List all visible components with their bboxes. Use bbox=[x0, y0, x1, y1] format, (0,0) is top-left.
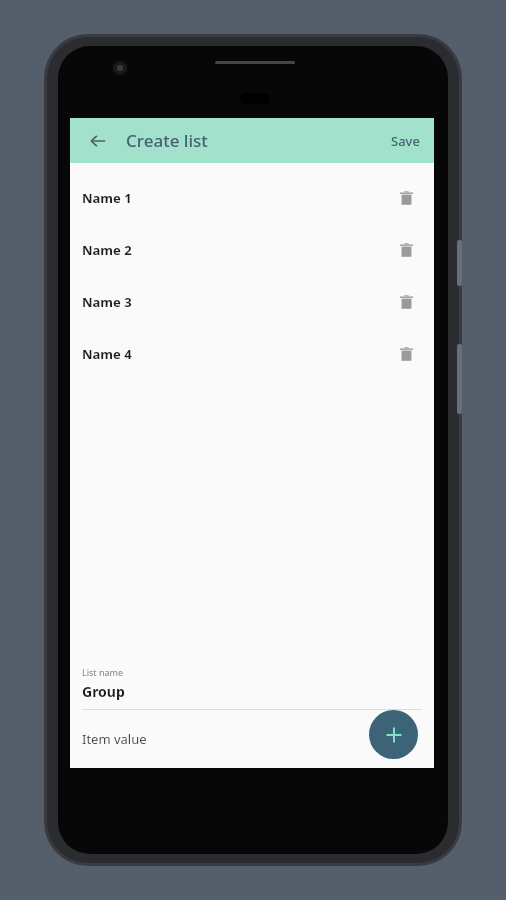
staticText: Group bbox=[82, 682, 125, 701]
button[interactable]: Delete Name 1 bbox=[390, 182, 422, 214]
staticText: List name bbox=[82, 666, 124, 678]
staticText: Name 1 bbox=[82, 189, 132, 207]
button[interactable]: Name 1 bbox=[70, 172, 434, 224]
button[interactable]: Item value bbox=[70, 710, 434, 768]
staticText: Item value bbox=[82, 730, 147, 748]
button[interactable]: Name 4 bbox=[70, 328, 434, 380]
button[interactable]: Name 3 bbox=[70, 276, 434, 328]
staticText: Name 3 bbox=[82, 293, 132, 311]
button[interactable]: Add item bbox=[369, 710, 418, 759]
button[interactable]: Delete Name 2 bbox=[390, 234, 422, 266]
staticText: Create list bbox=[126, 129, 208, 152]
button[interactable]: List name bbox=[70, 658, 434, 709]
button[interactable]: Save bbox=[377, 124, 434, 158]
staticText: Save bbox=[391, 132, 420, 150]
staticText: Name 4 bbox=[82, 345, 132, 363]
button[interactable]: Delete Name 4 bbox=[390, 338, 422, 370]
button[interactable]: Back bbox=[82, 125, 114, 157]
button[interactable]: Delete Name 3 bbox=[390, 286, 422, 318]
staticText: Name 2 bbox=[82, 241, 132, 259]
button[interactable]: Name 2 bbox=[70, 224, 434, 276]
